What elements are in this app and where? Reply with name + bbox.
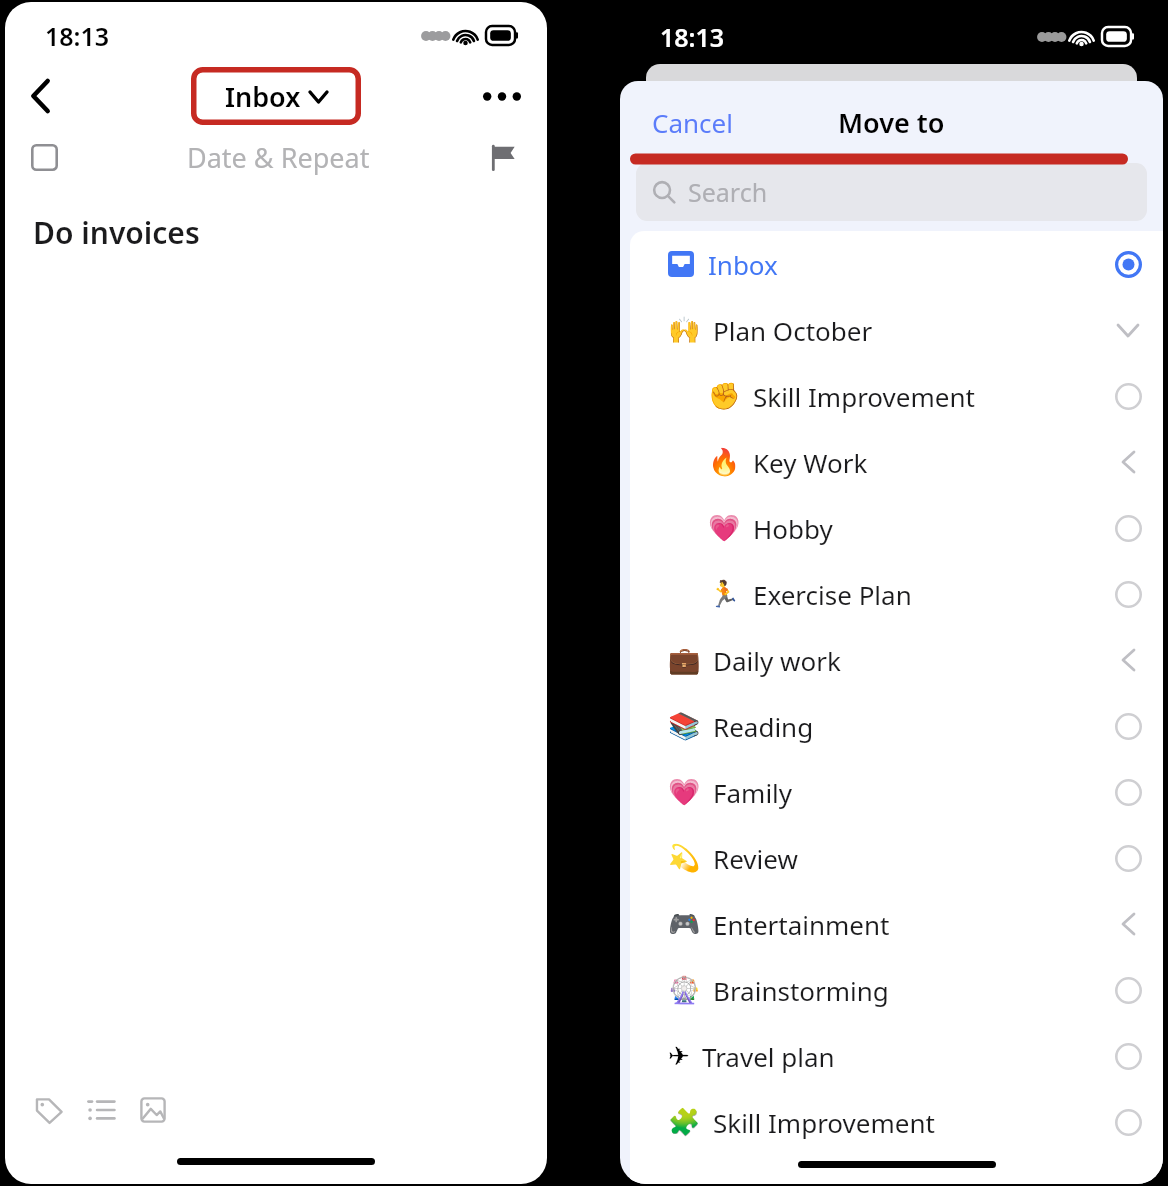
button[interactable]: ✈️ — [630, 1023, 1163, 1089]
staticText: Move to — [838, 104, 945, 141]
button[interactable]: More options — [475, 69, 529, 123]
staticText: Key Work — [753, 445, 868, 480]
staticText: Daily work — [713, 643, 841, 678]
button[interactable]: 💫 — [630, 825, 1163, 891]
staticText: Travel plan — [702, 1039, 835, 1074]
button[interactable]: Add checklist — [75, 1084, 127, 1136]
staticText: 18:13 — [660, 20, 725, 54]
button[interactable]: 💼 — [630, 627, 1163, 693]
button[interactable]: 📚 — [630, 693, 1163, 759]
staticText: ✈️ — [668, 1041, 690, 1071]
staticText: Search — [688, 175, 768, 209]
button[interactable]: Back — [13, 69, 67, 123]
staticText: 💫 — [668, 843, 701, 873]
staticText: Inbox — [708, 247, 778, 282]
staticText: Brainstorming — [713, 973, 889, 1008]
staticText: Inbox — [225, 78, 301, 115]
button[interactable]: 🧩 — [630, 1089, 1163, 1155]
staticText: 🙌 — [668, 315, 701, 345]
button[interactable]: Add image — [127, 1084, 179, 1136]
staticText: 💼 — [668, 645, 701, 675]
staticText: 🏃 — [708, 579, 741, 609]
button[interactable]: 🏃 — [630, 561, 1163, 627]
staticText: Do invoices — [33, 212, 200, 253]
button[interactable]: 🎮 — [630, 891, 1163, 957]
staticText: 📚 — [668, 711, 701, 741]
staticText: 18:13 — [45, 19, 110, 53]
button[interactable]: ✊ — [630, 363, 1163, 429]
staticText: Family — [713, 775, 793, 810]
button[interactable]: Inbox — [630, 231, 1163, 297]
staticText: Plan October — [713, 313, 873, 348]
staticText: Reading — [713, 709, 814, 744]
staticText: 🎡 — [668, 975, 701, 1005]
button[interactable]: Search — [636, 163, 1147, 221]
staticText: Skill Improvement — [753, 379, 975, 414]
staticText: Entertainment — [713, 907, 890, 942]
button[interactable]: 💗 — [630, 759, 1163, 825]
button[interactable]: Cancel — [652, 105, 733, 140]
staticText: Hobby — [753, 511, 833, 546]
button[interactable]: Date & Repeat — [187, 139, 370, 176]
staticText: 💗 — [668, 777, 701, 807]
button[interactable]: 🙌 — [630, 297, 1163, 363]
button[interactable]: 🎡 — [630, 957, 1163, 1023]
staticText: 🎮 — [668, 909, 701, 939]
staticText: Skill Improvement — [713, 1105, 935, 1140]
button[interactable]: Add tag — [23, 1084, 75, 1136]
staticText: 🧩 — [668, 1107, 701, 1137]
staticText: Review — [713, 841, 798, 876]
staticText: ✊ — [708, 381, 741, 411]
button[interactable]: 💗 — [630, 495, 1163, 561]
button[interactable]: 🔥 — [630, 429, 1163, 495]
button[interactable]: Complete task — [17, 130, 71, 184]
staticText: 💗 — [708, 513, 741, 543]
staticText: 🔥 — [708, 447, 741, 477]
button[interactable]: Inbox — [191, 67, 361, 125]
staticText: Exercise Plan — [753, 577, 912, 612]
button[interactable]: Flag priority — [475, 130, 529, 184]
